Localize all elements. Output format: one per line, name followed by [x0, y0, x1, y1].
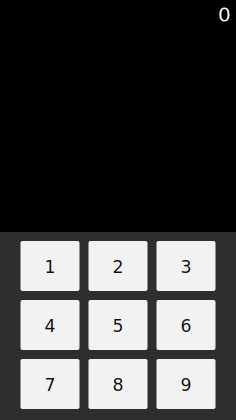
button[interactable]: 6 [156, 300, 215, 350]
button[interactable]: 5 [88, 300, 147, 350]
staticText: 9 [180, 375, 191, 395]
staticText: 2 [112, 257, 123, 277]
button[interactable]: 2 [88, 241, 147, 291]
staticText: 6 [180, 316, 191, 336]
staticText: 8 [112, 375, 123, 395]
staticText: 4 [44, 316, 55, 336]
staticText: 1 [44, 257, 55, 277]
button[interactable]: 4 [20, 300, 79, 350]
staticText: 7 [44, 375, 55, 395]
button[interactable]: 9 [156, 359, 215, 409]
button[interactable]: 1 [20, 241, 79, 291]
staticText: 5 [112, 316, 123, 336]
button[interactable]: 7 [20, 359, 79, 409]
button[interactable]: 3 [156, 241, 215, 291]
staticText: 3 [180, 257, 191, 277]
staticText: 0 [218, 3, 231, 26]
button[interactable]: 8 [88, 359, 147, 409]
